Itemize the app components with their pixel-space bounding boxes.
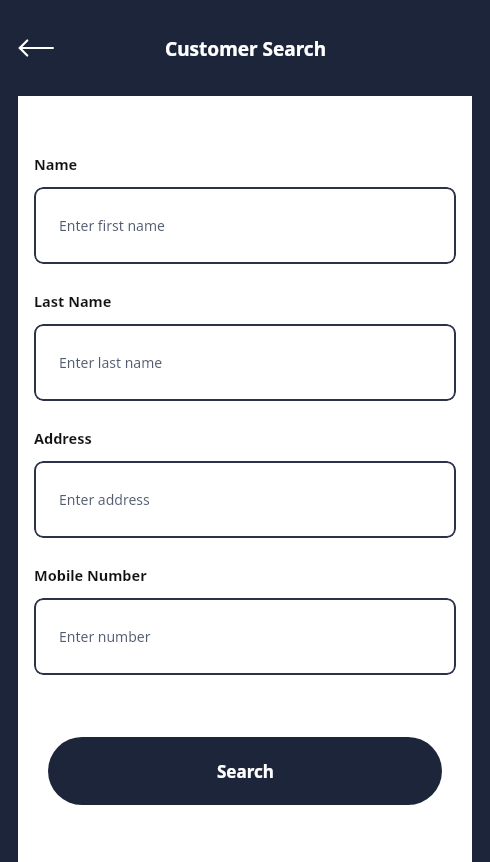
- staticText: Enter number: [59, 627, 151, 646]
- staticText: Name: [34, 154, 78, 174]
- button[interactable]: Enter last name: [34, 324, 456, 401]
- button[interactable]: Search: [48, 737, 442, 805]
- staticText: Mobile Number: [34, 565, 147, 585]
- button[interactable]: Enter first name: [34, 187, 456, 264]
- button[interactable]: Back: [10, 22, 62, 74]
- staticText: Customer Search: [165, 36, 326, 62]
- staticText: Enter address: [59, 490, 150, 509]
- staticText: Enter first name: [59, 216, 165, 235]
- button[interactable]: Enter number: [34, 598, 456, 675]
- button[interactable]: Enter address: [34, 461, 456, 538]
- staticText: Search: [217, 760, 274, 783]
- staticText: Address: [34, 428, 92, 448]
- staticText: Enter last name: [59, 353, 163, 372]
- staticText: Last Name: [34, 291, 112, 311]
